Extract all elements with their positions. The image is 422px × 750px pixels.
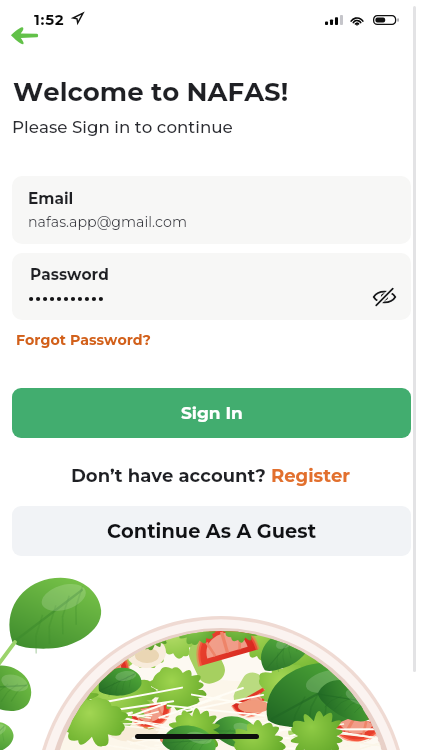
staticText: Continue As A Guest bbox=[107, 519, 317, 543]
button[interactable]: Continue As A Guest bbox=[12, 506, 411, 556]
staticText: Sign In bbox=[181, 403, 243, 424]
staticText: nafas.app@gmail.com bbox=[28, 213, 188, 230]
button[interactable]: Password bbox=[12, 253, 411, 320]
button[interactable]: Sign In bbox=[12, 388, 411, 438]
staticText: 1:52 bbox=[34, 10, 65, 28]
button[interactable]: Back bbox=[11, 26, 39, 44]
staticText: Email bbox=[28, 189, 74, 208]
button[interactable]: Email bbox=[12, 176, 411, 244]
button[interactable]: Show password bbox=[370, 283, 398, 311]
staticText: Register bbox=[271, 465, 351, 487]
button[interactable]: Forgot Password? bbox=[16, 331, 151, 348]
staticText: Don’t have account? bbox=[71, 465, 271, 487]
staticText: Forgot Password? bbox=[16, 331, 151, 348]
staticText: Please Sign in to continue bbox=[12, 117, 233, 137]
staticText: Welcome to NAFAS! bbox=[13, 76, 289, 108]
button[interactable]: Register bbox=[271, 465, 351, 487]
staticText: Password bbox=[30, 265, 109, 284]
